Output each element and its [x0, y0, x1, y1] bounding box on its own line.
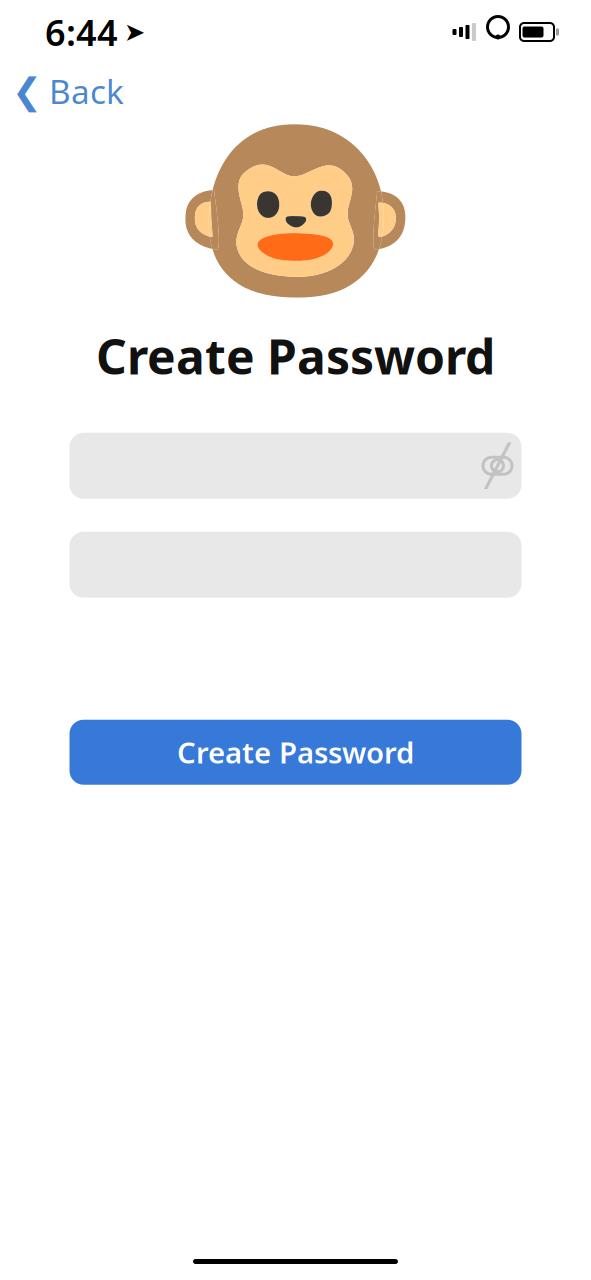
- button[interactable]: Create Password: [69, 720, 521, 785]
- staticText: ╱: [485, 443, 509, 488]
- button[interactable]: ❮: [0, 61, 124, 121]
- staticText: 6:44: [45, 8, 118, 56]
- staticText: ❮: [12, 71, 42, 111]
- staticText: Create Password: [177, 733, 414, 772]
- button[interactable]: Show password: [473, 442, 521, 490]
- staticText: ➤: [124, 18, 145, 46]
- staticText: 🐵: [171, 97, 420, 325]
- staticText: Back: [49, 69, 124, 113]
- staticText: Create Password: [96, 324, 495, 388]
